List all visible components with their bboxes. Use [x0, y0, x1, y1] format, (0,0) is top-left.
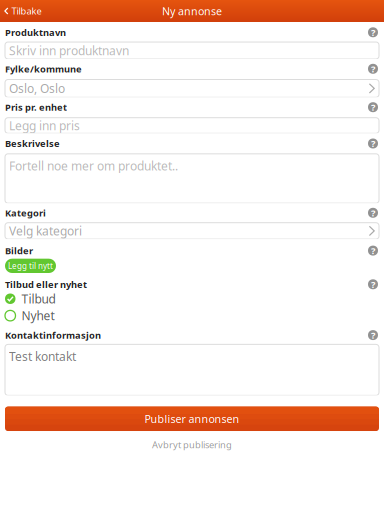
staticText: Test kontakt [9, 348, 76, 364]
staticText: Tilbud eller nyhet [5, 278, 87, 290]
staticText: ? [371, 63, 375, 75]
button[interactable]: Hjelp [367, 329, 379, 341]
button[interactable]: Legg til nytt [5, 259, 56, 273]
staticText: ? [371, 278, 375, 290]
staticText: Nyhet [21, 308, 54, 324]
staticText: Produktnavn [5, 26, 66, 38]
staticText: Skriv inn produktnavn [9, 42, 129, 58]
button[interactable]: Tilbake [0, 0, 48, 22]
button[interactable]: Avbryt publisering [0, 438, 384, 451]
staticText: Tilbud [21, 291, 55, 307]
staticText: Pris pr. enhet [5, 101, 67, 113]
button[interactable]: Hjelp [367, 137, 379, 149]
staticText: ? [371, 101, 375, 113]
staticText: Avbryt publisering [152, 438, 232, 451]
button[interactable]: Tilbud [0, 290, 384, 307]
staticText: ? [371, 329, 375, 341]
button[interactable]: Hjelp [367, 63, 379, 75]
button[interactable]: Nyhet [0, 307, 384, 324]
staticText: Beskrivelse [5, 137, 60, 150]
button[interactable]: Hjelp [367, 245, 379, 257]
staticText: Fylke/kommune [5, 63, 82, 75]
button[interactable]: Hjelp [367, 26, 379, 38]
staticText: Oslo, Oslo [9, 80, 65, 96]
staticText: Kontaktinformasjon [5, 329, 101, 341]
staticText: Publiser annonsen [144, 412, 239, 426]
button[interactable]: Hjelp [367, 278, 379, 290]
staticText: ? [371, 26, 375, 38]
button[interactable]: Oslo, Oslo [0, 79, 384, 97]
button[interactable]: Velg kategori [0, 223, 384, 239]
button[interactable]: Hjelp [367, 207, 379, 219]
staticText: Legg til nytt [8, 260, 53, 271]
staticText: Tilbake [12, 5, 42, 17]
staticText: Ny annonse [162, 4, 222, 18]
staticText: ? [371, 244, 375, 257]
staticText: Velg kategori [9, 223, 82, 239]
staticText: Kategori [5, 207, 46, 219]
button[interactable]: Publiser annonsen [0, 407, 384, 431]
staticText: Legg inn pris [9, 117, 80, 133]
staticText: Bilder [5, 244, 33, 257]
staticText: Fortell noe mer om produktet.. [9, 158, 178, 174]
staticText: ? [371, 137, 375, 150]
button[interactable]: Hjelp [367, 101, 379, 113]
staticText: ? [371, 207, 375, 219]
